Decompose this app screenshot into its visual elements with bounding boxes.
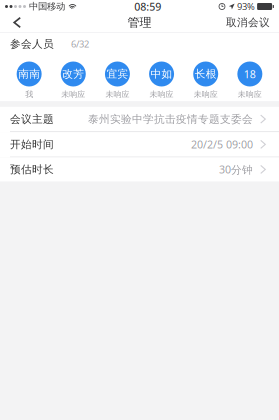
- button[interactable]: 中如: [146, 61, 178, 99]
- staticText: 未响应: [238, 89, 262, 99]
- staticText: 中国移动: [29, 1, 65, 12]
- staticText: 30分钟: [219, 162, 253, 176]
- button[interactable]: 返回: [0, 13, 31, 32]
- staticText: 20/2/5 09:00: [191, 137, 253, 151]
- staticText: 未响应: [61, 89, 85, 99]
- staticText: 参会人员: [10, 37, 54, 50]
- staticText: 管理: [127, 15, 151, 30]
- staticText: 中如: [151, 67, 173, 80]
- staticText: 我: [25, 89, 33, 99]
- staticText: 93%: [237, 0, 255, 13]
- button[interactable]: 开始时间: [0, 132, 279, 157]
- staticText: 开始时间: [10, 138, 54, 151]
- staticText: 预估时长: [10, 163, 54, 176]
- staticText: 改芳: [62, 67, 84, 80]
- staticText: 6/32: [71, 38, 89, 50]
- staticText: 未响应: [150, 89, 174, 99]
- staticText: 宜宾: [106, 67, 128, 80]
- button[interactable]: 会议主题: [0, 107, 279, 132]
- staticText: 未响应: [105, 89, 129, 99]
- button[interactable]: 长根: [190, 61, 222, 99]
- button[interactable]: 南南: [13, 61, 45, 99]
- button[interactable]: 宜宾: [101, 61, 133, 99]
- staticText: 南南: [18, 67, 40, 80]
- staticText: 取消会议: [226, 16, 270, 29]
- button[interactable]: 改芳: [57, 61, 89, 99]
- staticText: 长根: [195, 67, 217, 80]
- staticText: 会议主题: [10, 112, 54, 126]
- staticText: 08:59: [134, 0, 161, 14]
- staticText: 18: [244, 67, 256, 81]
- button[interactable]: 预估时长: [0, 157, 279, 181]
- staticText: 未响应: [194, 89, 218, 99]
- button[interactable]: 18: [234, 61, 266, 99]
- staticText: 泰州实验中学抗击疫情专题支委会: [88, 112, 253, 126]
- button[interactable]: 取消会议: [216, 13, 279, 32]
